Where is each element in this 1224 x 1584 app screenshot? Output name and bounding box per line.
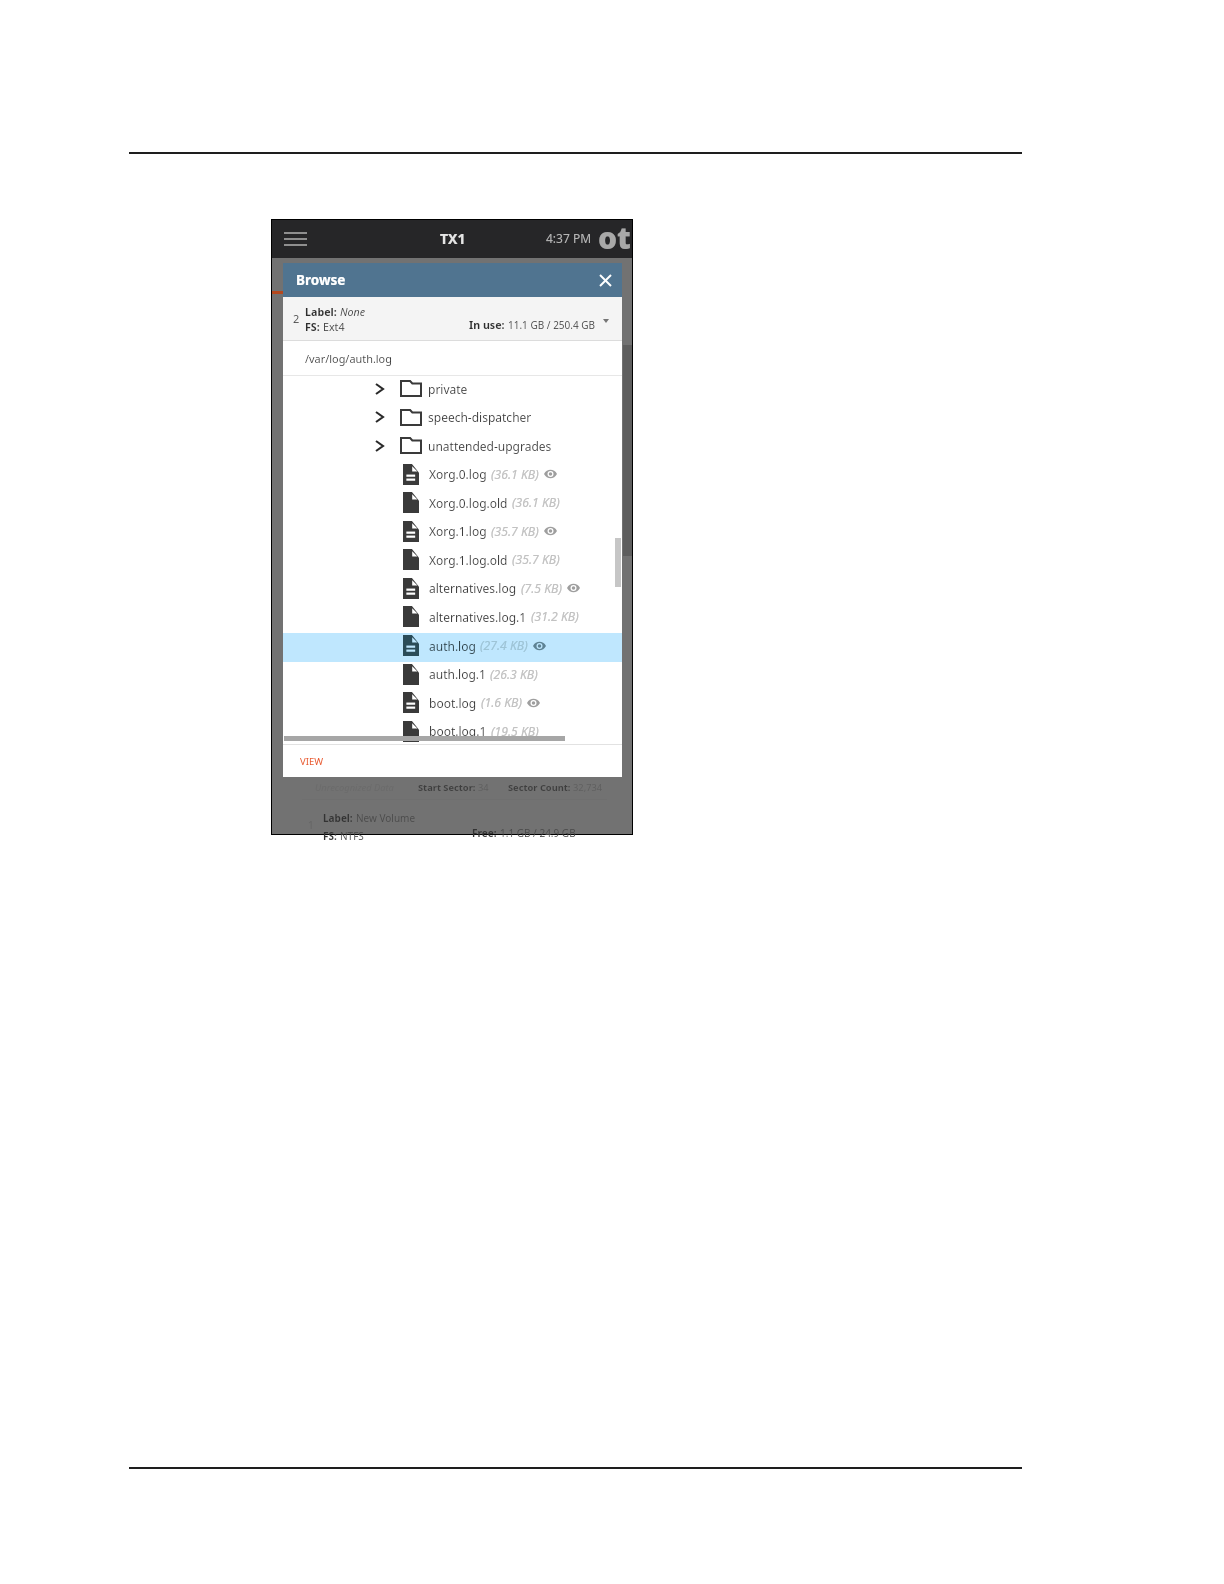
staticText: Free: xyxy=(472,826,500,840)
staticText: speech-dispatcher xyxy=(428,409,532,425)
staticText: TX1 xyxy=(440,229,466,248)
staticText: Xorg.1.log xyxy=(429,523,487,539)
staticText: /var/log/auth.log xyxy=(305,351,392,366)
staticText: alternatives.log.1 xyxy=(429,609,527,625)
button[interactable]: boot.log xyxy=(283,690,622,719)
staticText: (26.3 KB) xyxy=(490,666,538,683)
staticText: FS: xyxy=(305,320,323,335)
staticText: 32,734 xyxy=(573,781,603,794)
button[interactable]: boot.log.1 xyxy=(283,719,622,747)
staticText: private xyxy=(428,381,468,397)
staticText: None xyxy=(340,305,366,320)
staticText: New Volume xyxy=(356,811,416,825)
staticText: FS: xyxy=(323,829,340,843)
staticText: 2 xyxy=(293,311,300,326)
staticText: boot.log xyxy=(429,695,477,711)
staticText: 1.1 GB / 24.9 GB xyxy=(500,826,576,840)
button[interactable]: VIEW xyxy=(294,751,330,772)
button[interactable]: Xorg.1.log.old xyxy=(283,547,622,576)
staticText: (1.6 KB) xyxy=(481,694,522,711)
staticText: auth.log xyxy=(429,638,476,654)
button[interactable]: alternatives.log xyxy=(283,576,622,604)
staticText: Label: xyxy=(305,305,340,320)
staticText: (35.7 KB) xyxy=(512,551,560,568)
button[interactable]: Menu xyxy=(274,220,316,258)
staticText: 34 xyxy=(478,781,489,794)
staticText: Xorg.1.log.old xyxy=(429,552,508,568)
staticText: 4:37 PM xyxy=(546,230,592,246)
staticText: boot.log.1 xyxy=(429,723,487,739)
staticText: Ext4 xyxy=(323,320,345,335)
staticText: auth.log.1 xyxy=(429,666,486,682)
button[interactable]: alternatives.log.1 xyxy=(283,604,622,633)
button[interactable]: Xorg.1.log xyxy=(283,519,622,547)
staticText: Label: xyxy=(323,811,356,825)
staticText: Start Sector: xyxy=(418,781,478,794)
staticText: (36.1 KB) xyxy=(491,466,539,483)
button[interactable]: Close xyxy=(592,267,618,293)
staticText: NTFS xyxy=(340,829,364,843)
staticText: 11.1 GB / 250.4 GB xyxy=(508,318,596,332)
staticText: unattended-upgrades xyxy=(428,438,552,454)
staticText: alternatives.log xyxy=(429,580,517,596)
button[interactable]: auth.log.1 xyxy=(283,662,622,690)
staticText: In use: xyxy=(469,318,508,333)
staticText: Sector Count: xyxy=(508,781,573,794)
staticText: (7.5 KB) xyxy=(521,580,562,597)
button[interactable]: speech-dispatcher xyxy=(283,405,622,433)
button[interactable]: private xyxy=(283,376,622,405)
button[interactable]: Xorg.0.log xyxy=(283,462,622,490)
button[interactable]: unattended-upgrades xyxy=(283,433,622,462)
staticText: VIEW xyxy=(300,755,324,768)
staticText: Browse xyxy=(296,271,346,289)
button[interactable]: auth.log xyxy=(283,633,622,662)
button[interactable]: Xorg.0.log.old xyxy=(283,490,622,519)
staticText: (36.1 KB) xyxy=(512,494,560,511)
staticText: ot xyxy=(598,217,631,255)
staticText: (31.2 KB) xyxy=(531,608,579,625)
button[interactable]: 2 xyxy=(283,297,622,340)
staticText: (19.5 KB) xyxy=(491,723,539,740)
staticText: Xorg.0.log xyxy=(429,466,487,482)
staticText: (35.7 KB) xyxy=(491,523,539,540)
staticText: (27.4 KB) xyxy=(480,637,528,654)
button[interactable]: Expand volume details xyxy=(593,309,619,333)
staticText: Xorg.0.log.old xyxy=(429,495,508,511)
